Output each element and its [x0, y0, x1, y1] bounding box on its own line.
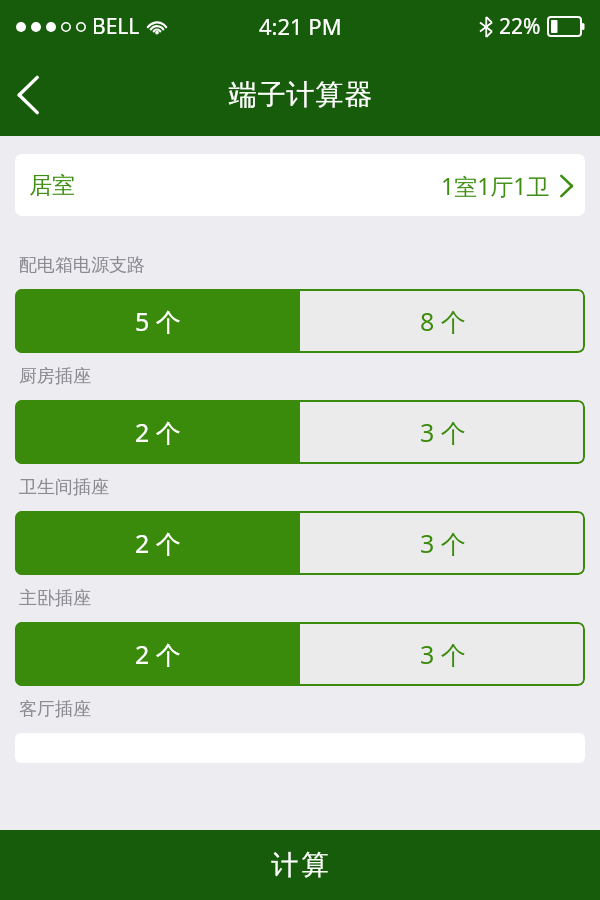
staticText: 2 个	[135, 637, 181, 671]
button[interactable]: 居室	[15, 154, 585, 216]
staticText: 3 个	[420, 526, 466, 560]
staticText: 1室1厅1卫	[441, 170, 550, 201]
staticText: 主卧插座	[19, 587, 91, 610]
staticText: 8 个	[420, 304, 466, 338]
staticText: 配电箱电源支路	[19, 254, 145, 277]
staticText: 厨房插座	[19, 365, 91, 388]
staticText: 3 个	[420, 637, 466, 671]
button[interactable]: 2 个	[15, 511, 300, 575]
button[interactable]: 3 个	[300, 400, 585, 464]
button[interactable]: 5 个	[15, 289, 300, 353]
staticText: 4:21 PM	[259, 11, 342, 41]
staticText: BELL	[92, 12, 140, 41]
staticText: 端子计算器	[228, 77, 373, 112]
staticText: 3 个	[420, 415, 466, 449]
button[interactable]: 2 个	[15, 622, 300, 686]
staticText: 5 个	[135, 304, 181, 338]
button[interactable]: 3 个	[300, 622, 585, 686]
button[interactable]: 计算	[0, 830, 600, 900]
button[interactable]: Back	[0, 53, 56, 136]
staticText: 计算	[270, 848, 330, 882]
button[interactable]: 3 个	[300, 511, 585, 575]
staticText: 卫生间插座	[19, 476, 109, 499]
staticText: 客厅插座	[19, 698, 91, 721]
button[interactable]: 8 个	[300, 289, 585, 353]
staticText: 22%	[499, 12, 541, 41]
staticText: 2 个	[135, 526, 181, 560]
staticText: 居室	[29, 171, 75, 200]
button[interactable]: 2 个	[15, 400, 300, 464]
staticText: 2 个	[135, 415, 181, 449]
